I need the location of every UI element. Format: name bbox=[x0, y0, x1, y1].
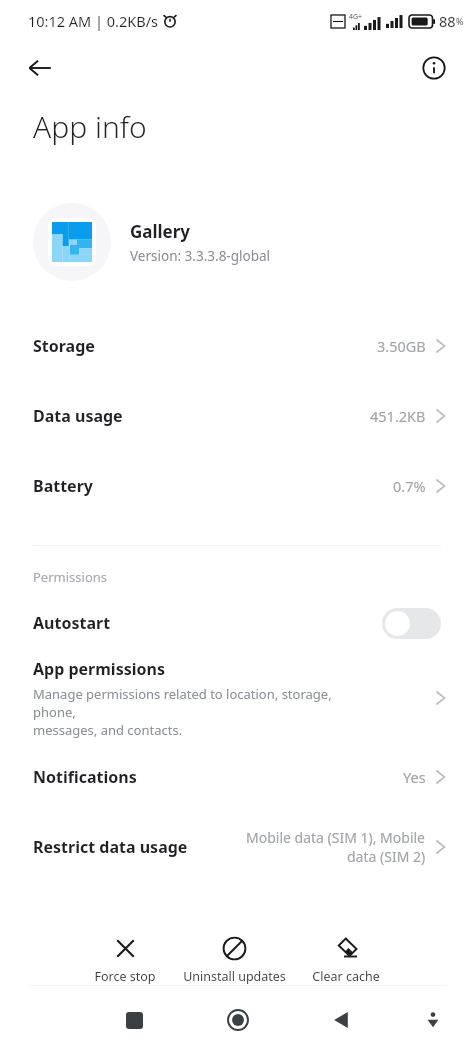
staticText: Yes bbox=[403, 767, 426, 787]
staticText: % bbox=[456, 15, 464, 27]
button[interactable]: Autostart bbox=[0, 592, 474, 654]
staticText: Permissions bbox=[33, 568, 108, 586]
button[interactable]: App details bbox=[412, 46, 456, 90]
staticText: Gallery bbox=[130, 220, 191, 243]
button[interactable]: Battery bbox=[0, 451, 474, 521]
staticText: Restrict data usage bbox=[33, 836, 188, 858]
button[interactable]: Home bbox=[214, 996, 262, 1044]
button[interactable]: Back bbox=[18, 46, 62, 90]
staticText: Manage permissions related to location, … bbox=[33, 685, 363, 721]
staticText: 0.7% bbox=[393, 476, 426, 496]
staticText: 451.2KB bbox=[370, 406, 426, 426]
staticText: Force stop bbox=[94, 968, 156, 985]
button[interactable]: Back bbox=[317, 996, 365, 1044]
staticText: Battery bbox=[33, 475, 93, 497]
staticText: 4G+ bbox=[349, 12, 363, 22]
staticText: Version: 3.3.3.8-global bbox=[130, 247, 271, 265]
button[interactable]: Storage bbox=[0, 311, 474, 381]
button[interactable]: Restrict data usage bbox=[0, 812, 474, 882]
staticText: messages, and contacts. bbox=[33, 721, 183, 739]
button[interactable]: Recents bbox=[110, 996, 158, 1044]
staticText: Autostart bbox=[33, 612, 111, 634]
staticText: 10:12 AM | 0.2KB/s bbox=[28, 11, 158, 31]
staticText: Mobile data (SIM 1), Mobile bbox=[246, 828, 426, 847]
staticText: Uninstall updates bbox=[183, 968, 286, 985]
button[interactable]: App permissions bbox=[0, 654, 474, 742]
button[interactable]: Force stop bbox=[92, 936, 158, 985]
staticText: App info bbox=[33, 106, 147, 147]
staticText: Storage bbox=[33, 335, 95, 357]
staticText: Notifications bbox=[33, 766, 137, 788]
button[interactable]: Clear cache bbox=[310, 936, 382, 985]
button[interactable]: Uninstall updates bbox=[181, 936, 288, 985]
button[interactable]: Data usage bbox=[0, 381, 474, 451]
button[interactable]: Notifications bbox=[0, 742, 474, 812]
staticText: data (SIM 2) bbox=[347, 847, 426, 866]
staticText: 88 bbox=[439, 11, 456, 31]
button[interactable]: Hide navigation bar bbox=[411, 998, 455, 1042]
staticText: Data usage bbox=[33, 405, 123, 427]
staticText: App permissions bbox=[33, 658, 165, 680]
staticText: Clear cache bbox=[312, 968, 380, 985]
staticText: 3.50GB bbox=[377, 336, 426, 356]
